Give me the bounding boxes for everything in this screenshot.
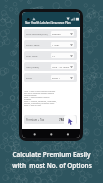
button[interactable]: Zone <box>24 73 77 82</box>
staticText: Premium + Tax <box>26 118 45 122</box>
staticText: Calculate Premium Easily <box>12 150 91 159</box>
staticText: Note: * 100% of sum insured is payable o… <box>24 90 57 106</box>
staticText: Age (Years) <box>26 65 40 68</box>
button[interactable]: Tap pointer <box>64 115 76 127</box>
staticText: Sum Insured (INR) <box>26 32 48 35</box>
staticText: 500000 <box>52 32 61 35</box>
staticText: 1 Year <box>52 43 60 46</box>
staticText: 7840 <box>59 118 66 122</box>
staticText: Policy Term <box>26 43 40 46</box>
staticText: with most No. of Options <box>12 161 92 170</box>
button[interactable]: Age (Years) <box>24 62 77 71</box>
staticText: Plan Type <box>26 54 38 57</box>
button[interactable]: Plan Type <box>24 51 77 60</box>
button[interactable]: Sum Insured (INR) <box>24 29 77 38</box>
staticText: 45 B - 47 Years <box>52 65 70 68</box>
staticText: 1A <box>52 54 56 57</box>
button[interactable]: Policy Term <box>24 40 77 49</box>
staticText: Zone <box>26 76 32 79</box>
staticText: Star Health Lakshmi Insurance Plan <box>25 21 71 25</box>
staticText: Zone 1 <box>52 76 60 79</box>
button[interactable]: Premium + Tax <box>24 115 77 124</box>
